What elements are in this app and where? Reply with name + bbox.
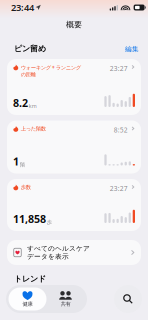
button[interactable]: ウォーキング + ランニングの距離 [7, 59, 141, 115]
staticText: 23:44 [11, 1, 34, 14]
staticText: 1 [13, 154, 19, 168]
staticText: 11,858 [13, 212, 46, 226]
staticText: 健康 [22, 301, 32, 307]
staticText: 階 [20, 161, 25, 168]
staticText: すべてのヘルスケアデータを表示 [27, 244, 90, 261]
staticText: 8:52 [114, 125, 128, 134]
staticText: ウォーキング + ランニングの距離 [21, 64, 81, 78]
staticText: 歩 [47, 219, 52, 225]
staticText: ピン留め [14, 44, 46, 53]
staticText: km [29, 102, 37, 109]
staticText: 上った階数 [21, 125, 46, 132]
button[interactable]: 編集 [125, 45, 139, 53]
staticText: 概要 [66, 20, 82, 29]
staticText: 23:27 [110, 184, 128, 193]
button[interactable]: すべてのヘルスケアデータを表示 [7, 240, 141, 265]
button[interactable]: 上った階数 [7, 120, 141, 173]
button[interactable]: Search [114, 285, 142, 313]
staticText: 歩数 [21, 184, 31, 191]
staticText: 23:27 [110, 64, 128, 73]
button[interactable]: 健康 [8, 287, 46, 310]
button[interactable]: 歩数 [7, 179, 141, 231]
staticText: 共有 [60, 301, 70, 307]
staticText: 編集 [125, 45, 139, 53]
button[interactable]: 共有 [46, 287, 84, 310]
staticText: 8.2 [13, 96, 28, 110]
staticText: トレンド [14, 274, 46, 284]
